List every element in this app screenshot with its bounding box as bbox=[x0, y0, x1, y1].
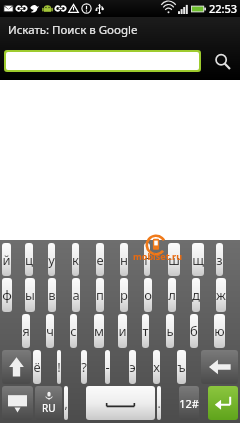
button[interactable]: ! bbox=[57, 350, 61, 384]
staticText: у bbox=[48, 251, 55, 269]
button[interactable]: Enter bbox=[208, 386, 238, 420]
staticText: к bbox=[72, 251, 79, 269]
button[interactable]: щ bbox=[192, 243, 204, 276]
staticText: ж bbox=[216, 286, 226, 304]
staticText: ! bbox=[57, 358, 61, 376]
button[interactable]: т bbox=[142, 314, 149, 348]
staticText: м bbox=[94, 322, 104, 340]
button[interactable]: д bbox=[192, 278, 200, 312]
staticText: г bbox=[144, 251, 150, 269]
button[interactable]: ф bbox=[2, 278, 12, 312]
button[interactable]: о bbox=[144, 278, 152, 312]
button[interactable]: к bbox=[72, 243, 79, 276]
staticText: Искать: Поиск в Google bbox=[8, 22, 138, 38]
button[interactable]: Switch keyboard bbox=[2, 386, 33, 420]
button[interactable]: л bbox=[168, 278, 176, 312]
button[interactable]: ъ bbox=[177, 350, 186, 384]
staticText: б bbox=[190, 322, 198, 340]
button[interactable]: е bbox=[96, 243, 104, 276]
staticText: ? bbox=[81, 358, 87, 376]
button[interactable] bbox=[6, 52, 199, 70]
button[interactable]: х bbox=[153, 350, 160, 384]
staticText: . bbox=[157, 395, 161, 411]
staticText: д bbox=[192, 286, 200, 304]
staticText: я bbox=[22, 322, 30, 340]
button[interactable]: ю bbox=[214, 314, 225, 348]
staticText: ц bbox=[25, 251, 33, 269]
button[interactable]: ж bbox=[216, 278, 226, 312]
button[interactable]: . bbox=[157, 386, 161, 420]
button[interactable]: RU bbox=[35, 386, 62, 420]
staticText: ш bbox=[168, 251, 180, 269]
staticText: э bbox=[129, 358, 136, 376]
button[interactable]: Space bbox=[86, 386, 155, 420]
staticText: ы bbox=[25, 286, 35, 304]
staticText: ъ bbox=[177, 358, 186, 376]
button[interactable]: у bbox=[48, 243, 55, 276]
button[interactable]: Shift bbox=[2, 350, 31, 384]
staticText: о bbox=[144, 286, 152, 304]
staticText: , bbox=[64, 395, 68, 411]
button[interactable]: , bbox=[64, 386, 68, 420]
staticText: ь bbox=[166, 322, 174, 340]
button[interactable]: 12# bbox=[179, 386, 199, 420]
button[interactable]: р bbox=[120, 278, 128, 312]
staticText: 12# bbox=[179, 396, 199, 411]
button[interactable]: э bbox=[129, 350, 136, 384]
staticText: т bbox=[142, 322, 149, 340]
button[interactable]: и bbox=[118, 314, 127, 348]
staticText: ч bbox=[46, 322, 54, 340]
button[interactable]: я bbox=[22, 314, 30, 348]
staticText: - bbox=[105, 358, 110, 376]
button[interactable]: ч bbox=[46, 314, 54, 348]
staticText: ф bbox=[2, 286, 12, 304]
staticText: ю bbox=[214, 322, 225, 340]
staticText: л bbox=[168, 286, 176, 304]
staticText: е bbox=[96, 251, 104, 269]
button[interactable]: Backspace bbox=[201, 350, 238, 384]
button[interactable]: ? bbox=[81, 350, 87, 384]
button[interactable]: м bbox=[94, 314, 104, 348]
button[interactable]: г bbox=[144, 243, 150, 276]
button[interactable]: ь bbox=[166, 314, 174, 348]
button[interactable]: в bbox=[48, 278, 56, 312]
button[interactable]: п bbox=[96, 278, 104, 312]
button[interactable]: Search bbox=[207, 46, 237, 76]
staticText: а bbox=[72, 286, 80, 304]
staticText: и bbox=[118, 322, 127, 340]
staticText: х bbox=[153, 358, 160, 376]
staticText: щ bbox=[192, 251, 204, 269]
staticText: 22:53 bbox=[209, 1, 238, 16]
staticText: в bbox=[48, 286, 56, 304]
button[interactable]: н bbox=[120, 243, 128, 276]
staticText: з bbox=[216, 251, 223, 269]
staticText: ё bbox=[33, 358, 41, 376]
button[interactable]: ш bbox=[168, 243, 180, 276]
button[interactable]: з bbox=[216, 243, 223, 276]
staticText: р bbox=[120, 286, 128, 304]
staticText: й bbox=[2, 251, 11, 269]
button[interactable]: б bbox=[190, 314, 198, 348]
button[interactable]: ё bbox=[33, 350, 41, 384]
staticText: RU bbox=[42, 401, 56, 415]
button[interactable]: с bbox=[70, 314, 77, 348]
staticText: mobiset.ru bbox=[133, 250, 182, 262]
button[interactable]: ы bbox=[25, 278, 35, 312]
staticText: п bbox=[96, 286, 104, 304]
button[interactable]: а bbox=[72, 278, 80, 312]
button[interactable]: й bbox=[2, 243, 11, 276]
staticText: н bbox=[120, 251, 128, 269]
staticText: с bbox=[70, 322, 77, 340]
button[interactable]: ц bbox=[25, 243, 33, 276]
button[interactable]: - bbox=[105, 350, 110, 384]
